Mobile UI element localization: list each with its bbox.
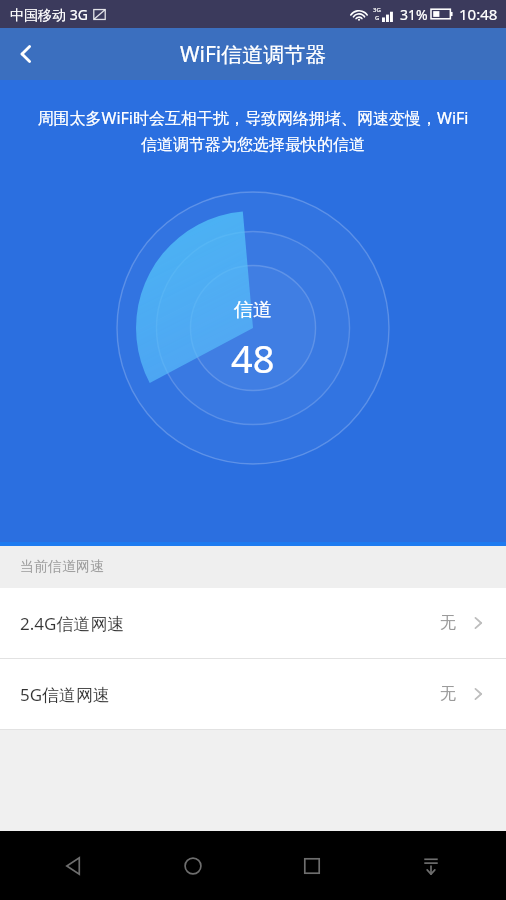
staticText: 当前信道网速: [20, 558, 104, 576]
staticText: G: [375, 14, 380, 22]
button[interactable]: Recents: [284, 838, 340, 894]
button[interactable]: 5G信道网速: [0, 659, 506, 729]
button[interactable]: Back: [0, 28, 52, 80]
staticText: 周围太多WiFi时会互相干扰，导致网络拥堵、网速变慢，WiFi信道调节器为您选择…: [34, 107, 472, 155]
staticText: 31%: [400, 5, 428, 24]
staticText: 3G: [373, 6, 381, 14]
staticText: WiFi信道调节器: [180, 40, 327, 69]
staticText: 10:48: [459, 4, 498, 24]
button[interactable]: Home: [165, 838, 221, 894]
button[interactable]: Back: [46, 838, 102, 894]
staticText: 中国移动 3G: [10, 5, 88, 24]
staticText: 无: [440, 684, 456, 704]
staticText: 5G信道网速: [20, 683, 111, 706]
staticText: 无: [440, 613, 456, 633]
staticText: 48: [231, 332, 275, 384]
staticText: 2.4G信道网速: [20, 612, 125, 635]
staticText: 信道: [234, 298, 272, 322]
button[interactable]: 2.4G信道网速: [0, 588, 506, 658]
button[interactable]: Hide navigation bar: [403, 838, 459, 894]
